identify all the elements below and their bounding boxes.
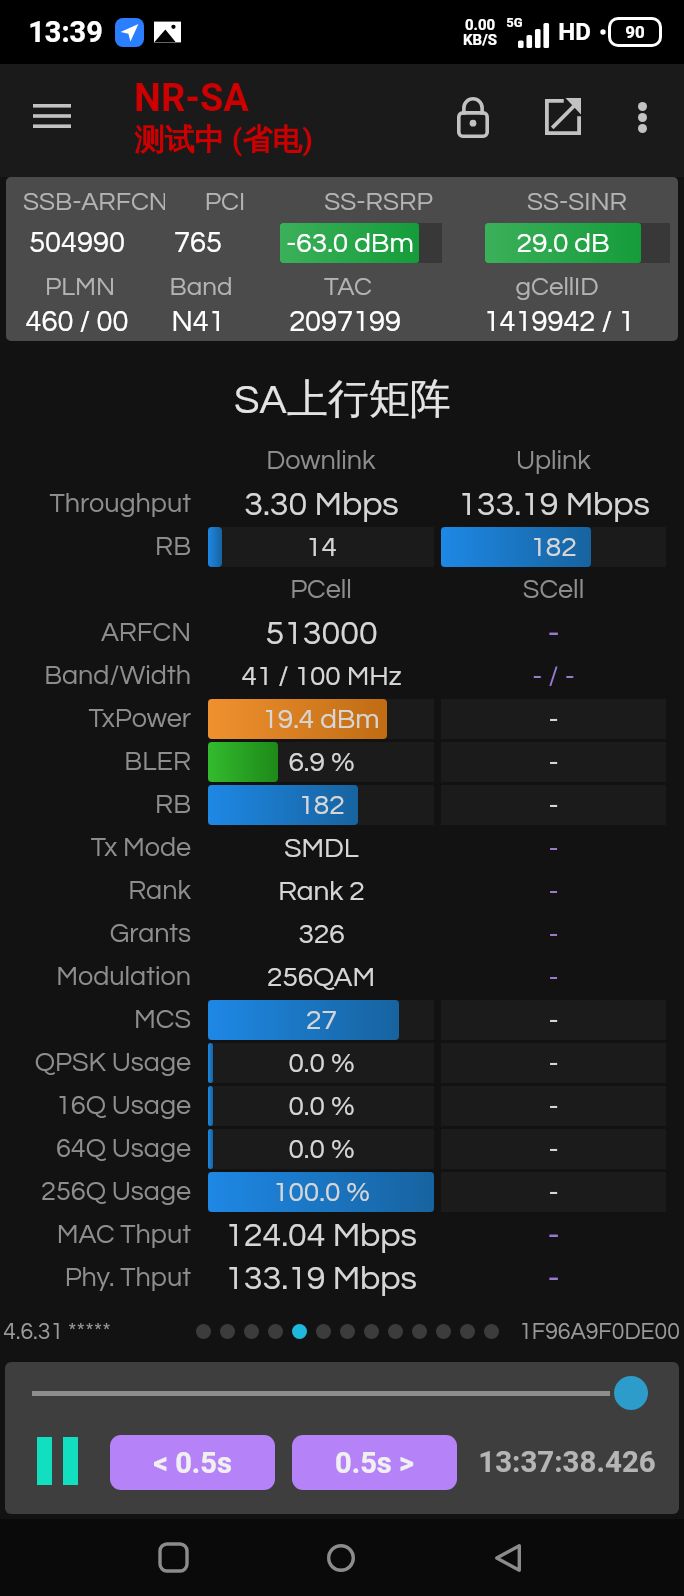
button[interactable]: Open in new [531,85,595,149]
staticText: 5G [506,15,523,30]
staticText: - [548,920,559,949]
staticText: Grants [109,920,191,948]
staticText: SA上行矩阵 [234,374,451,426]
staticText: 14 [306,533,337,562]
staticText: 124.04 Mbps [225,1218,417,1253]
staticText: SCell [441,576,666,604]
staticText: QPSK Usage [34,1049,191,1077]
staticText: 16Q Usage [55,1092,191,1120]
staticText: 2097199 [248,307,442,337]
staticText: SSB-ARFCN [23,189,165,216]
staticText: PCell [208,576,434,604]
button[interactable]: More options [614,85,670,149]
staticText: 测试中 (省电) [134,121,313,159]
staticText: - [548,834,559,863]
staticText: 0.0 % [288,1135,355,1164]
staticText: 504990 [6,228,148,258]
button[interactable]: Recents [141,1519,205,1596]
staticText: Rank 2 [278,877,365,906]
staticText: - [547,616,560,651]
staticText: 256Q Usage [41,1178,191,1206]
staticText: - [548,877,559,906]
staticText: 64Q Usage [55,1135,191,1163]
staticText: - [548,748,559,777]
button[interactable]: 0.5s > [292,1435,457,1490]
staticText: 1F96A9F0DE00 [519,1320,680,1344]
staticText: 0.0 % [288,1049,355,1078]
staticText: TxPower [88,705,191,733]
staticText: SMDL [284,834,359,863]
staticText: PCI [165,189,285,216]
staticText: - [547,1261,560,1296]
staticText: Rank [128,877,191,905]
staticText: 41 / 100 MHz [241,662,402,691]
staticText: - [547,1218,560,1253]
staticText: Band/Width [44,662,191,690]
button[interactable]: Seek [614,1376,648,1410]
button[interactable]: < 0.5s [110,1435,275,1490]
staticText: 0.5s > [335,1446,414,1480]
staticText: - [548,1178,559,1207]
staticText: - [548,1006,559,1035]
staticText: Downlink [208,447,434,475]
staticText: 19.4 dBm [262,705,380,734]
staticText: 0.0 % [288,1092,355,1121]
staticText: - [548,963,559,992]
button[interactable]: Pause [37,1437,78,1485]
staticText: 256QAM [267,963,375,992]
staticText: 765 [148,228,248,258]
staticText: 460 / 00 [6,307,148,337]
button[interactable]: Menu [13,84,90,147]
staticText: Uplink [441,447,666,475]
staticText: 3.30 Mbps [244,487,399,522]
staticText: N41 [148,307,248,337]
staticText: Modulation [56,963,191,991]
staticText: Phy. Thput [64,1264,191,1292]
staticText: 326 [298,920,345,949]
staticText: 133.19 Mbps [225,1261,417,1296]
staticText: TAC [251,274,445,301]
button[interactable]: Back [476,1519,540,1596]
staticText: - [548,791,559,820]
staticText: - [548,705,559,734]
staticText: 513000 [265,616,378,651]
staticText: HD [558,18,591,46]
staticText: 133.19 Mbps [458,487,650,522]
staticText: < 0.5s [153,1446,232,1480]
staticText: 13:39 [28,15,103,49]
staticText: BLER [124,748,191,776]
staticText: Throughput [49,490,191,518]
staticText: SS-RSRP [285,189,472,216]
staticText: -63.0 dBm [286,229,414,258]
staticText: gCellID [445,274,669,301]
staticText: - [548,1135,559,1164]
staticText: 100.0 % [273,1178,370,1207]
staticText: - [548,1092,559,1121]
staticText: 29.0 dB [516,229,610,258]
staticText: RB [155,791,191,819]
staticText: MAC Thput [56,1221,191,1249]
staticText: PLMN [9,274,151,301]
staticText: 90 [625,22,645,42]
staticText: 1419942 / 1 [442,307,676,337]
staticText: 6.9 % [288,748,355,777]
staticText: Tx Mode [90,834,191,862]
staticText: Band [151,274,251,301]
staticText: NR-SA [134,76,249,121]
button[interactable]: Home [309,1519,373,1596]
staticText: 13:37:38.426 [478,1445,656,1480]
staticText: - [548,1049,559,1078]
staticText: 4.6.31 ***** [3,1320,111,1344]
staticText: 182 [530,533,577,562]
staticText: RB [155,533,191,561]
staticText: SS-SINR [472,189,678,216]
staticText: MCS [134,1006,191,1034]
staticText: 27 [306,1006,337,1035]
staticText: ARFCN [100,619,191,647]
staticText: 0.00 KB/S [463,16,497,49]
staticText: - / - [532,662,575,691]
staticText: 182 [298,791,345,820]
button[interactable]: Lock [441,85,505,149]
